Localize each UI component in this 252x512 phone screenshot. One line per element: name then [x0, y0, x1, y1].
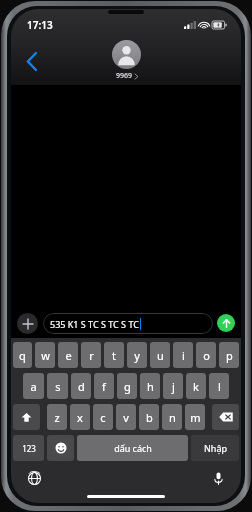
button[interactable]: Backspace: [212, 404, 239, 430]
staticText: h: [147, 379, 154, 394]
staticText: b: [146, 410, 153, 425]
button[interactable]: d: [71, 373, 91, 399]
staticText: o: [203, 348, 210, 363]
staticText: r: [89, 348, 94, 363]
button[interactable]: o: [196, 342, 216, 368]
staticText: 17:13: [27, 18, 53, 32]
button[interactable]: dấu cách: [77, 435, 188, 461]
button[interactable]: Back: [17, 46, 47, 76]
staticText: s: [55, 379, 61, 394]
button[interactable]: j: [163, 373, 183, 399]
button[interactable]: q: [13, 342, 32, 368]
staticText: c: [100, 410, 106, 425]
button[interactable]: v: [116, 404, 136, 430]
button[interactable]: n: [162, 404, 182, 430]
button[interactable]: h: [140, 373, 160, 399]
button[interactable]: e: [58, 342, 78, 368]
staticText: e: [65, 348, 72, 363]
staticText: i: [182, 348, 185, 363]
staticText: f: [102, 379, 106, 394]
button[interactable]: c: [93, 404, 113, 430]
staticText: k: [193, 379, 199, 394]
staticText: d: [78, 379, 85, 394]
staticText: l: [218, 379, 221, 394]
button[interactable]: u: [150, 342, 170, 368]
button[interactable]: w: [35, 342, 55, 368]
staticText: x: [77, 410, 83, 425]
staticText: y: [134, 348, 140, 363]
button[interactable]: Dictate: [209, 469, 227, 487]
staticText: u: [157, 348, 164, 363]
staticText: dấu cách: [114, 442, 152, 454]
button[interactable]: Emoji: [47, 435, 74, 461]
button[interactable]: g: [117, 373, 137, 399]
staticText: z: [54, 410, 60, 425]
staticText: j: [172, 379, 175, 394]
button[interactable]: a: [23, 373, 44, 399]
button[interactable]: r: [81, 342, 101, 368]
staticText: 123: [22, 443, 36, 454]
button[interactable]: 9969: [112, 40, 141, 81]
button[interactable]: 535 K1 S TC S TC S TC: [50, 313, 189, 334]
button[interactable]: f: [94, 373, 114, 399]
staticText: 535 K1 S TC S TC S TC: [50, 318, 139, 330]
staticText: m: [190, 410, 201, 425]
staticText: v: [123, 410, 129, 425]
button[interactable]: s: [47, 373, 68, 399]
staticText: Nhập: [204, 442, 227, 454]
button[interactable]: Send: [217, 314, 235, 332]
button[interactable]: z: [47, 404, 67, 430]
button[interactable]: i: [173, 342, 193, 368]
staticText: p: [226, 348, 233, 363]
button[interactable]: l: [209, 373, 229, 399]
staticText: t: [112, 348, 116, 363]
button[interactable]: Change keyboard language: [25, 469, 43, 487]
button[interactable]: y: [127, 342, 147, 368]
staticText: g: [124, 379, 131, 394]
button[interactable]: b: [139, 404, 159, 430]
staticText: w: [41, 348, 50, 363]
button[interactable]: Shift: [13, 404, 40, 430]
staticText: 9969: [116, 71, 133, 81]
button[interactable]: x: [70, 404, 90, 430]
button[interactable]: k: [186, 373, 206, 399]
button[interactable]: 123: [13, 435, 44, 461]
button[interactable]: p: [219, 342, 239, 368]
button[interactable]: Add attachment: [17, 313, 38, 334]
button[interactable]: Nhập: [191, 435, 239, 461]
button[interactable]: t: [104, 342, 124, 368]
staticText: a: [30, 379, 37, 394]
staticText: q: [19, 348, 26, 363]
staticText: n: [169, 410, 176, 425]
button[interactable]: m: [185, 404, 205, 430]
